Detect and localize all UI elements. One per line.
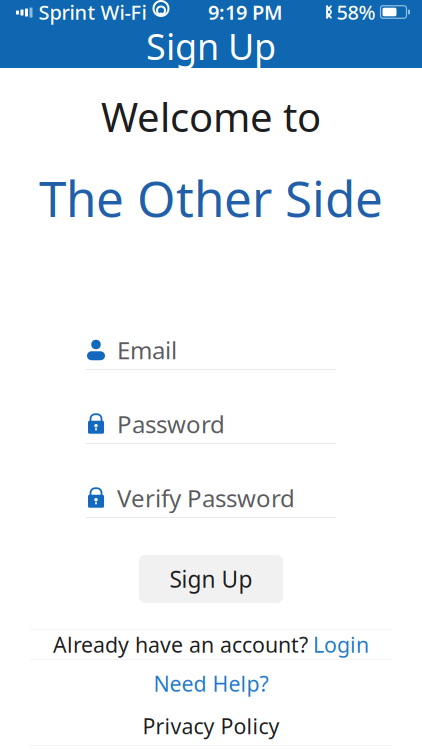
staticText: Sign Up (169, 564, 252, 594)
staticText: Sign Up (146, 22, 276, 70)
button[interactable]: Sign Up (139, 555, 283, 603)
staticText: 9:19 PM (208, 0, 283, 25)
button[interactable]: Email (86, 335, 336, 370)
staticText: Welcome to (101, 90, 321, 143)
staticText: Login (313, 630, 369, 659)
button[interactable]: Privacy Policy (30, 707, 392, 745)
staticText: 58% (336, 0, 375, 25)
staticText: Email (117, 334, 177, 366)
button[interactable]: Need Help? (30, 660, 392, 707)
staticText: Verify Password (117, 482, 295, 514)
button[interactable]: Verify Password (86, 483, 336, 518)
staticText: Already have an account? (53, 630, 308, 659)
staticText: Need Help? (153, 669, 268, 698)
staticText: Password (117, 408, 225, 440)
button[interactable]: Password (86, 409, 336, 444)
staticText: Privacy Policy (142, 712, 279, 740)
staticText: Sprint Wi-Fi (38, 0, 146, 25)
staticText: The Other Side (39, 165, 383, 231)
button[interactable]: Already have an account? (30, 630, 392, 659)
